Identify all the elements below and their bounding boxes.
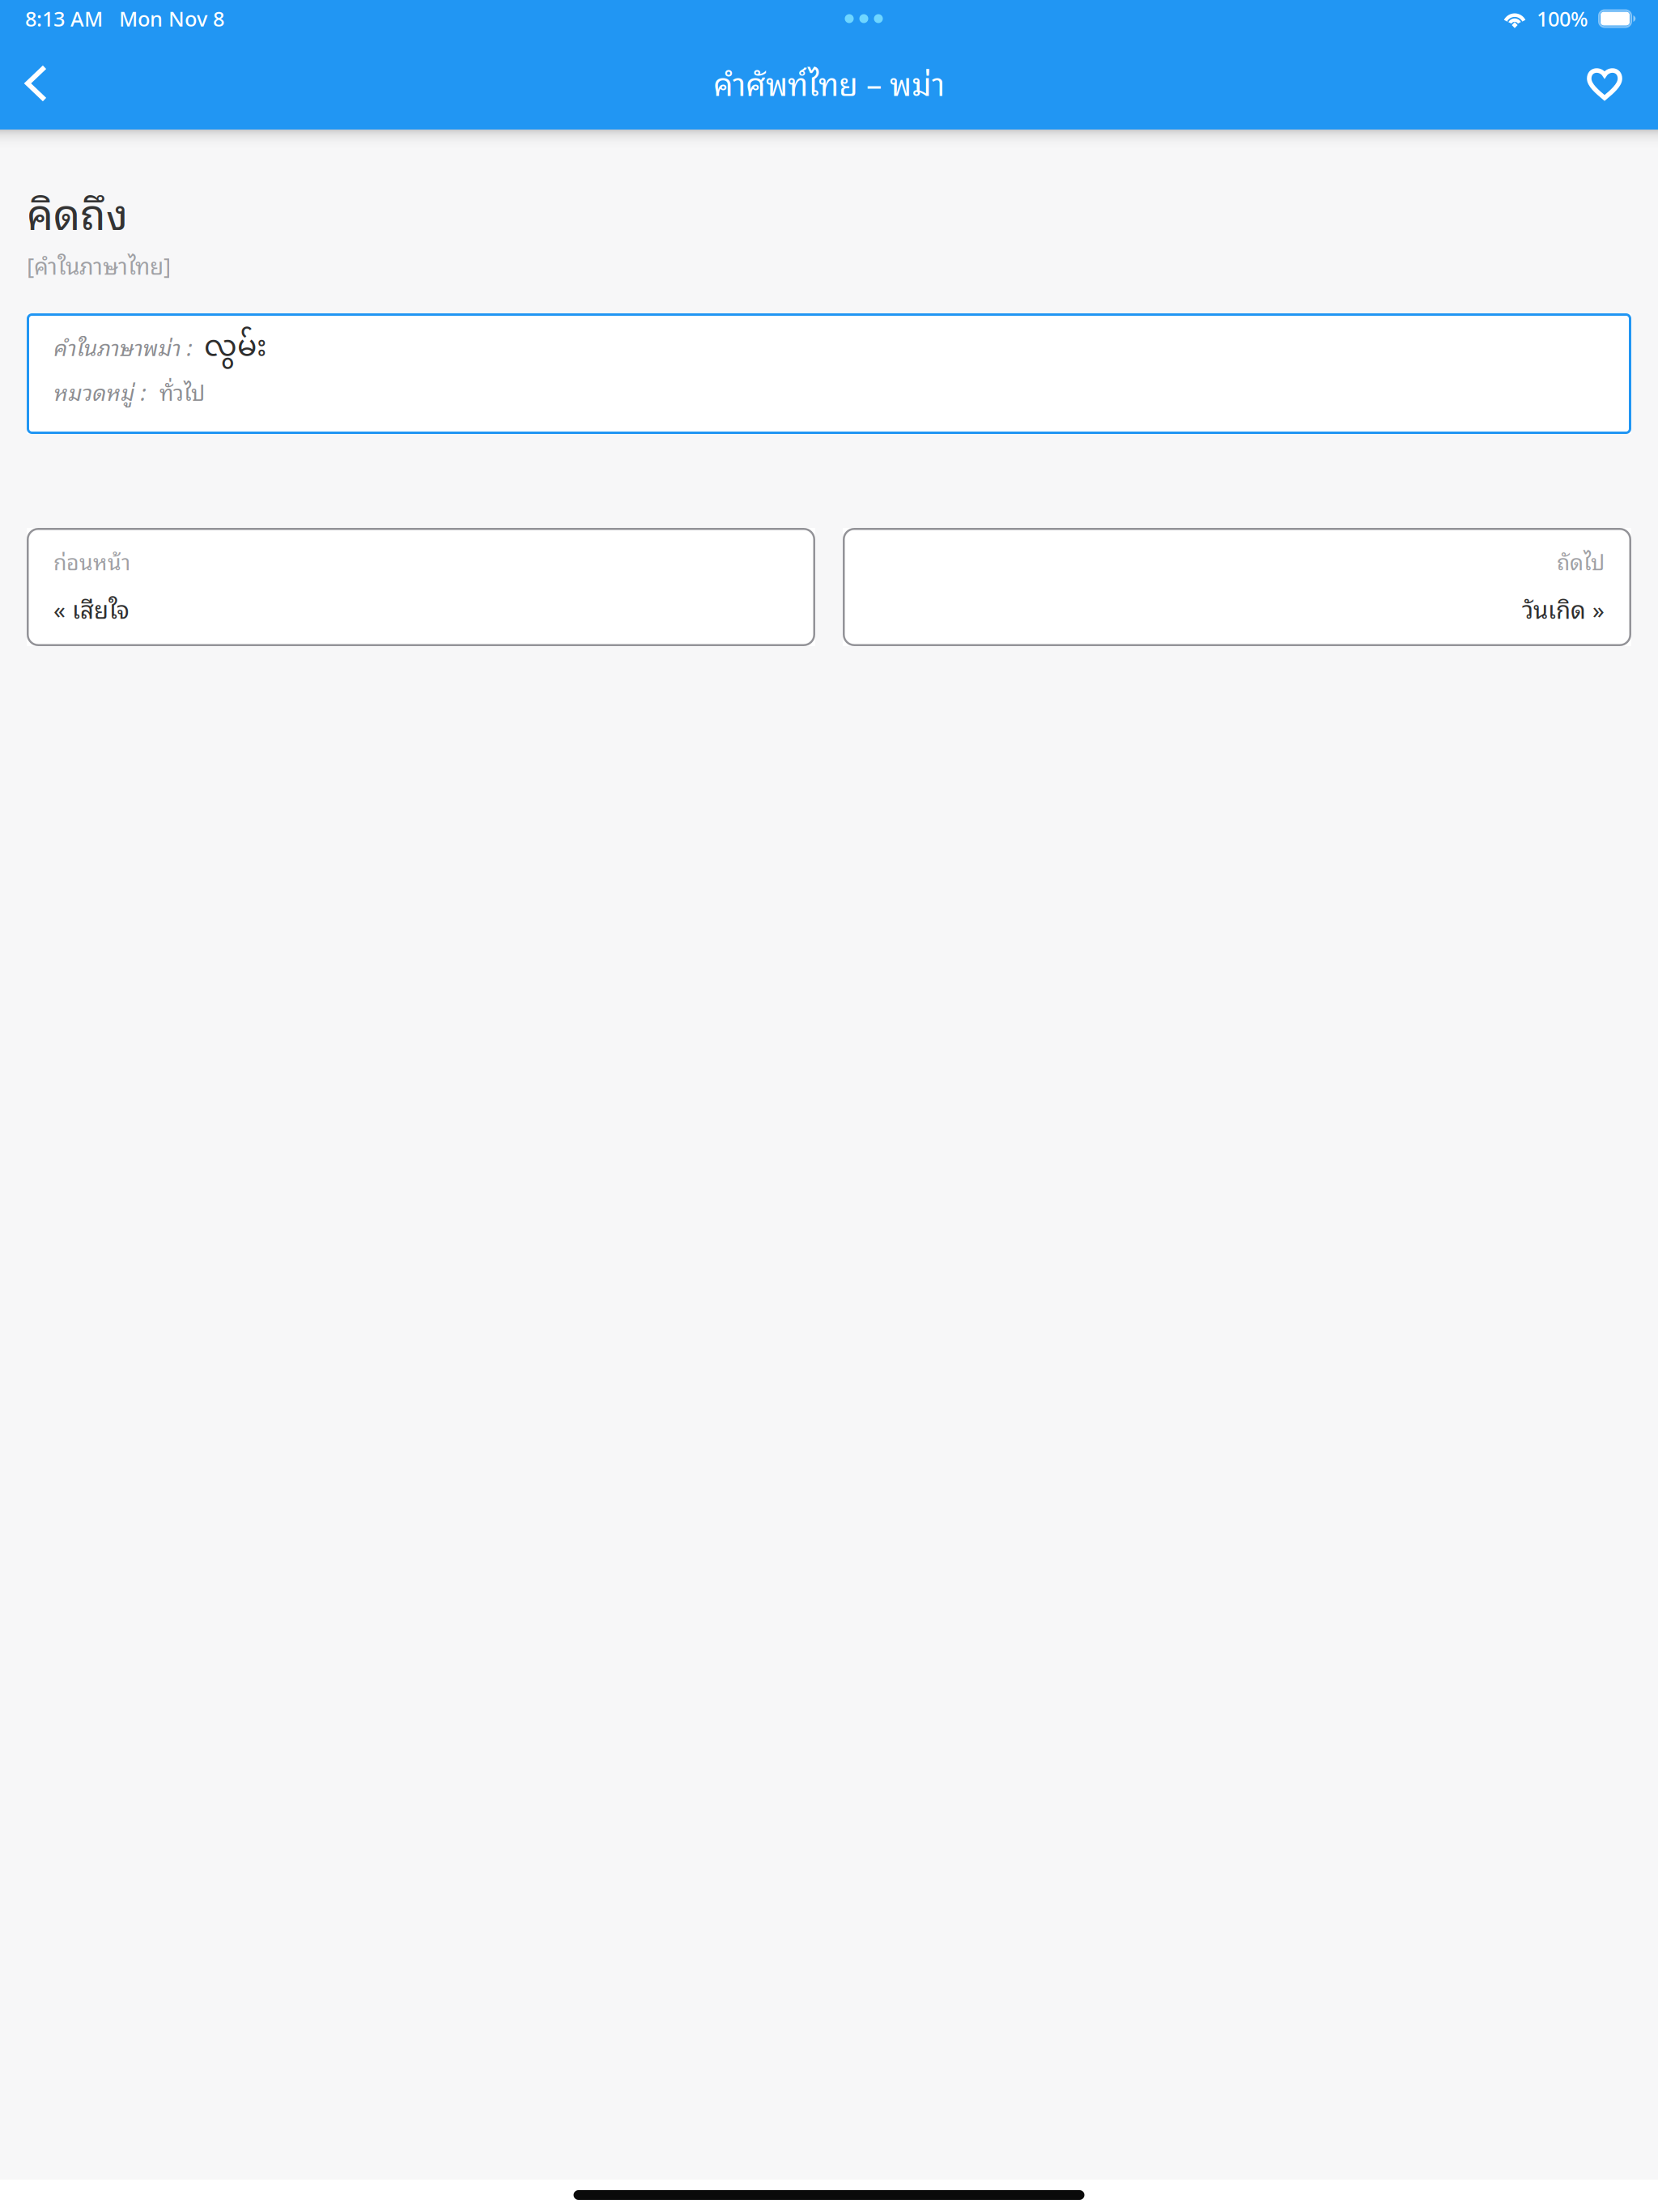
staticText: 100% (1537, 5, 1588, 32)
staticText: ถัดไป (1557, 543, 1605, 578)
staticText: คิดถึง (27, 177, 128, 245)
staticText: คำศัพท์ไทย – พม่า (713, 57, 945, 107)
staticText: ทั่วไป (159, 374, 205, 408)
staticText: คำในภาษาพม่า : (53, 329, 191, 364)
staticText: หมวดหมู่ : (53, 374, 145, 408)
button[interactable]: ถัดไป (843, 528, 1631, 646)
button[interactable]: Back (0, 43, 68, 124)
staticText: « เสียใจ (53, 589, 130, 627)
staticText: วันเกิด » (1522, 589, 1605, 627)
staticText: 8:13 AM (25, 5, 103, 32)
staticText: [คำในภาษาไทย] (27, 246, 171, 283)
button[interactable]: Add to favorites (1566, 45, 1658, 122)
button[interactable]: ก่อนหน้า (27, 528, 815, 646)
staticText: လွမ်း (204, 317, 266, 381)
staticText: Mon Nov 8 (119, 5, 224, 32)
staticText: ก่อนหน้า (53, 543, 130, 578)
